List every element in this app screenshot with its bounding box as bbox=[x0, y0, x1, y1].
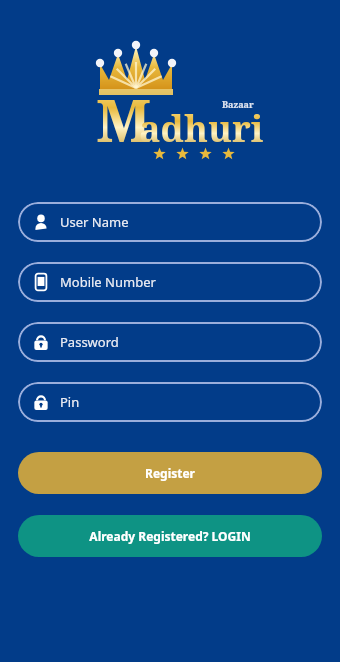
staticText: M bbox=[96, 80, 152, 159]
button[interactable]: Register bbox=[18, 452, 322, 494]
button[interactable]: User Name bbox=[18, 202, 322, 242]
staticText: Bazaar bbox=[222, 98, 254, 110]
staticText: User Name bbox=[60, 213, 129, 231]
button[interactable]: Pin bbox=[18, 382, 322, 422]
button[interactable]: Already Registered? LOGIN bbox=[18, 515, 322, 557]
staticText: Already Registered? LOGIN bbox=[89, 528, 251, 544]
button[interactable]: Password bbox=[18, 322, 322, 362]
staticText: Register bbox=[145, 465, 195, 481]
staticText: Pin bbox=[60, 393, 80, 411]
staticText: Mobile Number bbox=[60, 273, 156, 291]
staticText: Password bbox=[60, 333, 119, 351]
staticText: adhuri bbox=[139, 104, 264, 153]
button[interactable]: Mobile Number bbox=[18, 262, 322, 302]
